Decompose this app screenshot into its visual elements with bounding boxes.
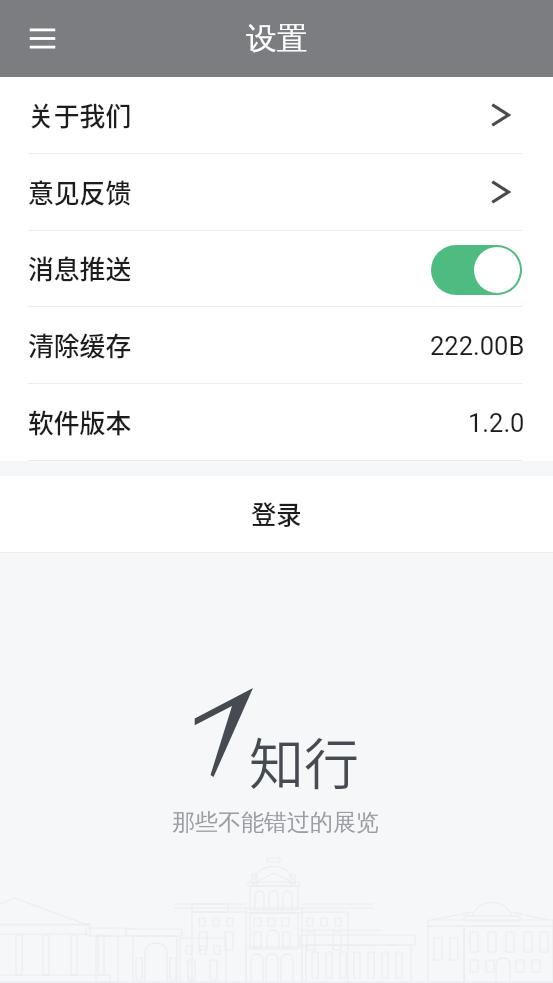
button[interactable]: 登录 [0,476,553,552]
staticText: 关于我们 [28,96,132,133]
other: Open [492,181,510,203]
button[interactable]: 消息推送 [0,231,553,306]
staticText: 222.00B [430,331,525,361]
staticText: 那些不能错过的展览 [172,808,379,837]
staticText: 知行 [249,720,360,800]
staticText: 意见反馈 [28,173,132,210]
other: Open [492,104,510,126]
staticText: 1.2.0 [468,408,525,438]
staticText: 设置 [246,20,307,58]
button[interactable]: 软件版本 [0,384,553,460]
button[interactable]: 关于我们 [0,77,553,153]
staticText: 消息推送 [28,249,132,286]
button[interactable]: Message push toggle [431,245,522,295]
staticText: 清除缓存 [28,326,132,363]
staticText: 软件版本 [28,403,132,440]
button[interactable]: 清除缓存 [0,307,553,383]
staticText: 登录 [251,495,302,532]
button[interactable]: Menu [18,14,67,63]
button[interactable]: 意见反馈 [0,154,553,230]
